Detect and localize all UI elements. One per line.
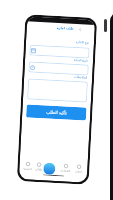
staticText: حسابي [75,170,82,173]
button[interactable]: Add request [43,162,56,175]
button[interactable]: تأكيد الطلب [26,104,87,120]
staticText: طلب اجازة [57,26,74,31]
button[interactable] [29,44,90,59]
button[interactable]: طلباتي [32,162,45,171]
button[interactable] [28,61,89,76]
staticText: الملاحظات [29,72,87,78]
staticText: تاريخ البداية [30,55,88,62]
staticText: طلباتي [35,168,42,171]
button[interactable]: الاشعارات [59,163,72,173]
button[interactable]: الرئيسية [21,161,34,171]
button[interactable]: حسابي [72,164,85,173]
staticText: الرئيسية [23,167,32,171]
staticText: نوع الاجازة [31,38,89,45]
button[interactable] [27,78,88,103]
staticText: الاشعارات [60,169,70,173]
staticText: تأكيد الطلب [46,109,67,117]
button[interactable]: Back [78,27,83,32]
